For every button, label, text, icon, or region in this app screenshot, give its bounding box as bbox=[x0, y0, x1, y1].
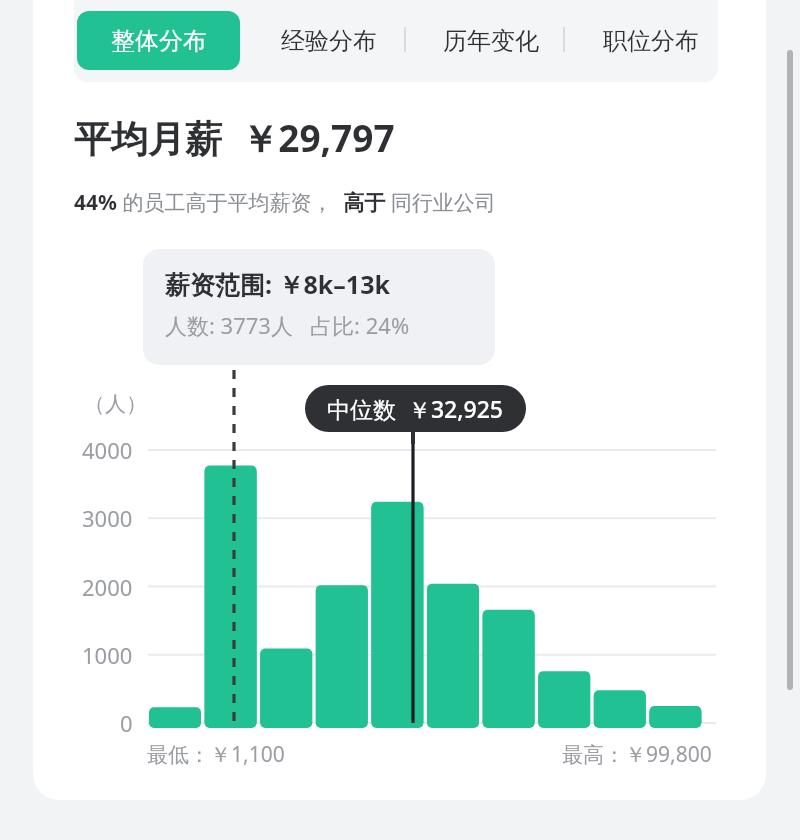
staticText: 经验分布 bbox=[281, 26, 377, 56]
staticText: 平均月薪 ￥29,797 bbox=[74, 112, 395, 163]
staticText: 人数: 3773人 占比: 24% bbox=[165, 310, 410, 340]
staticText: 1000 bbox=[82, 640, 133, 670]
staticText: 历年变化 bbox=[443, 26, 539, 56]
staticText: 44% 的员工高于平均薪资， 高于 同行业公司 bbox=[74, 188, 496, 217]
button[interactable]: 薪资范围: ￥8k–13k bbox=[143, 249, 495, 365]
button[interactable]: 中位数 ￥32,925 bbox=[305, 385, 526, 432]
staticText: 中位数 ￥32,925 bbox=[327, 393, 504, 424]
staticText: 0 bbox=[120, 708, 133, 738]
staticText: 职位分布 bbox=[603, 26, 699, 56]
staticText: 最高：￥99,800 bbox=[562, 740, 712, 769]
staticText: 2000 bbox=[82, 572, 133, 602]
button[interactable]: 经验分布 bbox=[262, 11, 396, 70]
staticText: 最低：￥1,100 bbox=[147, 740, 285, 769]
staticText: 薪资范围: ￥8k–13k bbox=[165, 267, 390, 301]
button[interactable]: 历年变化 bbox=[424, 11, 558, 70]
staticText: 整体分布 bbox=[111, 26, 207, 56]
button[interactable]: 整体分布 bbox=[77, 11, 240, 70]
staticText: （人） bbox=[84, 391, 147, 417]
staticText: 4000 bbox=[82, 435, 133, 465]
button[interactable]: 职位分布 bbox=[584, 11, 718, 70]
staticText: 3000 bbox=[82, 503, 133, 533]
